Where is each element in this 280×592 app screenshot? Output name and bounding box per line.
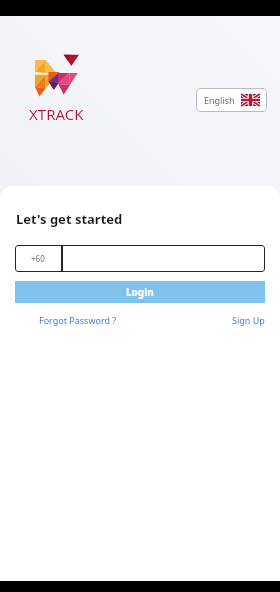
- staticText: Let's get started: [16, 210, 123, 228]
- staticText: +60: [31, 253, 45, 264]
- button[interactable]: Sign Up: [140, 314, 265, 326]
- button[interactable]: Login: [15, 281, 265, 303]
- staticText: XTRACK: [29, 104, 84, 124]
- button[interactable]: Select language: English: [196, 88, 267, 112]
- staticText: Forgot Password ?: [39, 314, 117, 326]
- button[interactable]: Forgot Password ?: [15, 314, 140, 326]
- staticText: Sign Up: [232, 314, 265, 326]
- staticText: English: [204, 94, 235, 106]
- staticText: Login: [126, 285, 154, 299]
- button[interactable]: Phone number: [15, 245, 265, 272]
